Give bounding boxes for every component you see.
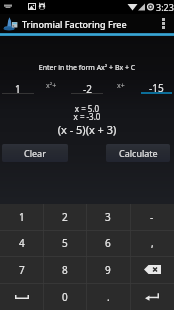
button[interactable]: 7: [0, 256, 43, 283]
button[interactable]: 0: [43, 283, 86, 310]
staticText: 9: [105, 263, 111, 277]
staticText: ,: [151, 236, 154, 250]
button[interactable]: -: [130, 204, 174, 230]
button[interactable]: Clear: [2, 144, 68, 162]
staticText: -: [150, 210, 154, 224]
staticText: Enter in the form Ax² + Bx + C: [0, 63, 174, 73]
button[interactable]: More options: [156, 14, 170, 33]
staticText: 0: [62, 290, 68, 304]
staticText: 1: [15, 82, 21, 93]
staticText: 3: [105, 210, 111, 224]
staticText: (x - 5)(x + 3): [0, 122, 174, 137]
button[interactable]: DEL: [130, 256, 174, 283]
button[interactable]: 6: [86, 230, 130, 256]
button[interactable]: -15: [141, 81, 172, 94]
staticText: 5: [62, 236, 68, 250]
staticText: 8: [62, 263, 68, 277]
button[interactable]: 1: [2, 82, 34, 94]
button[interactable]: ,: [130, 230, 174, 256]
button[interactable]: 1: [0, 204, 43, 230]
button[interactable]: 5: [43, 230, 86, 256]
staticText: .: [107, 290, 110, 304]
button[interactable]: SPC: [0, 283, 43, 310]
staticText: x²+: [46, 81, 57, 91]
staticText: x = -3.0: [0, 111, 174, 122]
staticText: Trinomial Factoring Free: [22, 18, 127, 30]
staticText: 3:23: [156, 1, 174, 13]
button[interactable]: 2: [43, 204, 86, 230]
button[interactable]: -2: [71, 82, 103, 94]
staticText: 7: [19, 263, 25, 277]
staticText: 4: [19, 236, 25, 250]
staticText: -15: [149, 81, 164, 92]
button[interactable]: ENT: [130, 283, 174, 310]
button[interactable]: 3: [86, 204, 130, 230]
button[interactable]: 8: [43, 256, 86, 283]
staticText: 1: [19, 210, 25, 224]
staticText: Calculate: [119, 147, 158, 159]
staticText: 2: [62, 210, 68, 224]
staticText: x = 5.0: [0, 103, 174, 114]
staticText: Clear: [24, 147, 46, 159]
staticText: 6: [105, 236, 111, 250]
staticText: -2: [83, 82, 92, 93]
button[interactable]: 9: [86, 256, 130, 283]
staticText: x+: [117, 81, 125, 91]
button[interactable]: 4: [0, 230, 43, 256]
button[interactable]: .: [86, 283, 130, 310]
button[interactable]: Calculate: [106, 144, 170, 162]
